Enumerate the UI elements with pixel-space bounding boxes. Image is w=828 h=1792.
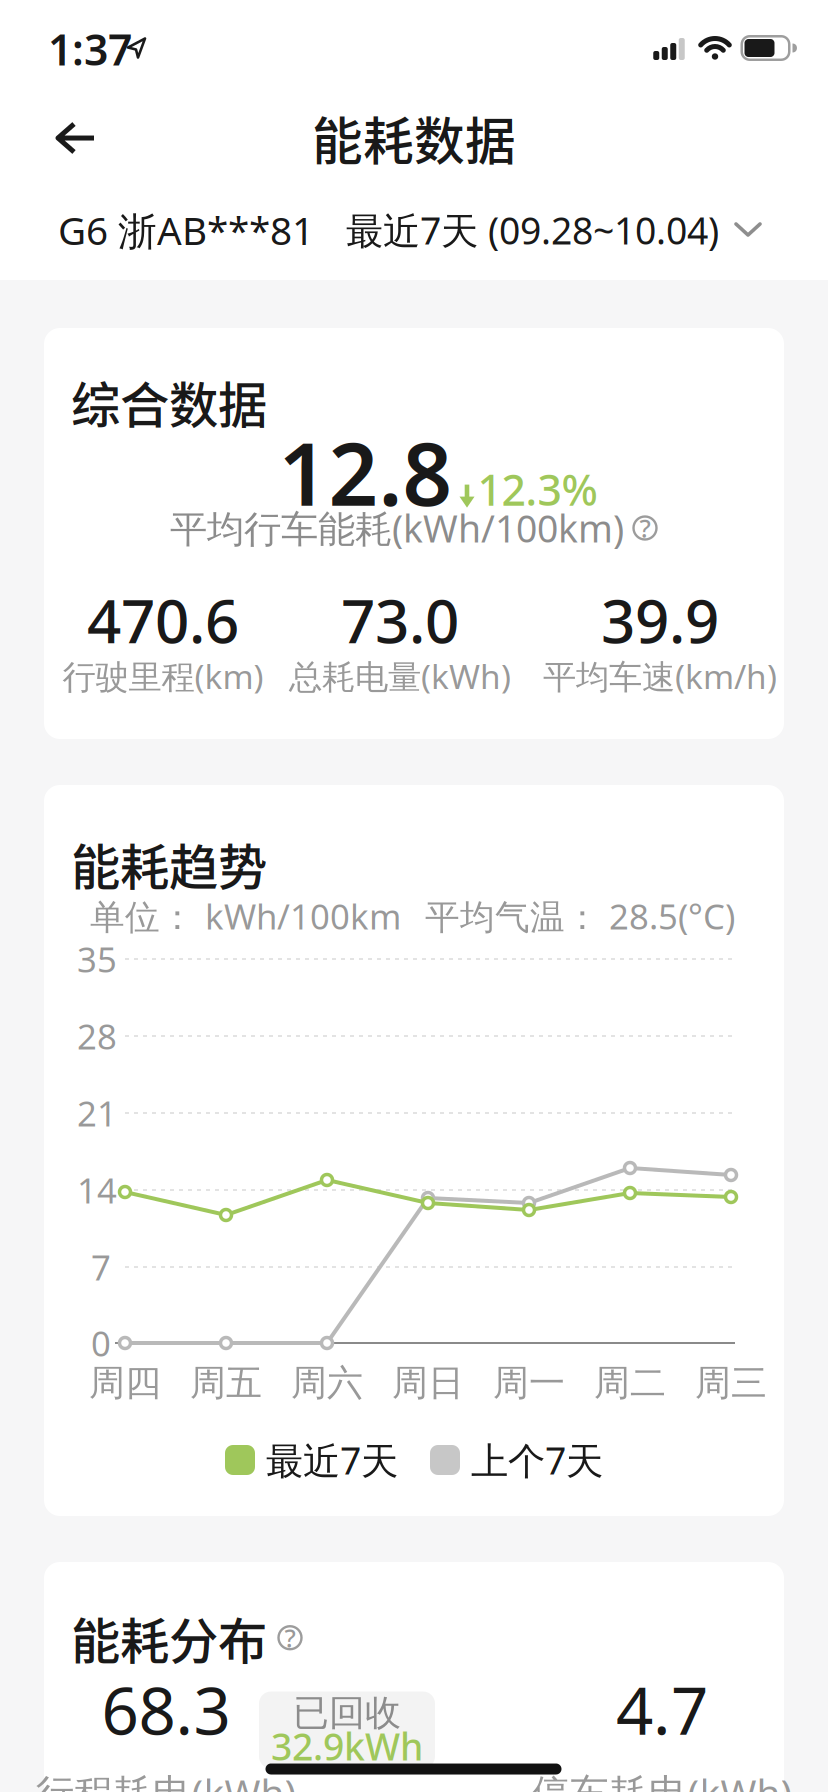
staticText: G6 浙AB***81 <box>58 204 314 256</box>
staticText: ? <box>284 1621 295 1654</box>
staticText: ? <box>639 511 650 545</box>
staticText: 周六 <box>291 1361 363 1405</box>
staticText: 最近7天 (09.28~10.04) <box>346 205 719 255</box>
staticText: 平均行车能耗(kWh/100km) <box>170 503 624 553</box>
staticText: 上个7天 <box>471 1435 603 1485</box>
button[interactable]: G6 浙AB***81 <box>58 204 314 256</box>
staticText: 能耗趋势 <box>71 828 267 899</box>
staticText: 32.9kWh <box>271 1721 423 1771</box>
staticText: 周一 <box>493 1361 565 1405</box>
staticText: 周四 <box>89 1361 161 1405</box>
button[interactable]: 说明 <box>277 1625 303 1651</box>
staticText: 行驶里程(km) <box>62 654 263 698</box>
staticText: 68.3 <box>101 1666 230 1753</box>
staticText: 总耗电量(kWh) <box>289 654 511 698</box>
staticText: 0 <box>91 1320 111 1366</box>
staticText: 周日 <box>392 1361 464 1405</box>
staticText: 周五 <box>190 1361 262 1405</box>
staticText: 综合数据 <box>71 366 267 437</box>
staticText: 39.9 <box>601 580 719 660</box>
staticText: 已回收 <box>293 1691 401 1735</box>
staticText: 最近7天 <box>266 1435 398 1485</box>
staticText: 能耗分布 <box>71 1602 267 1673</box>
button[interactable]: 最近7天 (09.28~10.04) <box>346 205 762 255</box>
staticText: 12.3% <box>477 461 597 517</box>
staticText: 470.6 <box>87 580 239 660</box>
staticText: 35 <box>77 936 117 982</box>
staticText: 7 <box>91 1244 111 1290</box>
staticText: 28 <box>77 1013 117 1059</box>
staticText: 1:37 <box>48 21 132 77</box>
button[interactable]: 说明 <box>632 515 658 541</box>
staticText: 平均车速(km/h) <box>543 654 777 698</box>
staticText: 12.8 <box>278 414 452 530</box>
staticText: 21 <box>77 1090 117 1136</box>
staticText: 周二 <box>594 1361 666 1405</box>
staticText: 行程耗电(kWh) <box>35 1767 296 1792</box>
staticText: 4.7 <box>616 1666 708 1753</box>
staticText: 停车耗电(kWh) <box>531 1767 792 1792</box>
staticText: 周三 <box>695 1361 767 1405</box>
button[interactable]: Back <box>40 108 112 170</box>
staticText: 73.0 <box>341 580 459 660</box>
staticText: 单位： kWh/100km <box>90 893 401 939</box>
staticText: 14 <box>77 1167 117 1213</box>
staticText: 能耗数据 <box>312 101 516 175</box>
staticText: 平均气温： 28.5(°C) <box>425 893 735 939</box>
